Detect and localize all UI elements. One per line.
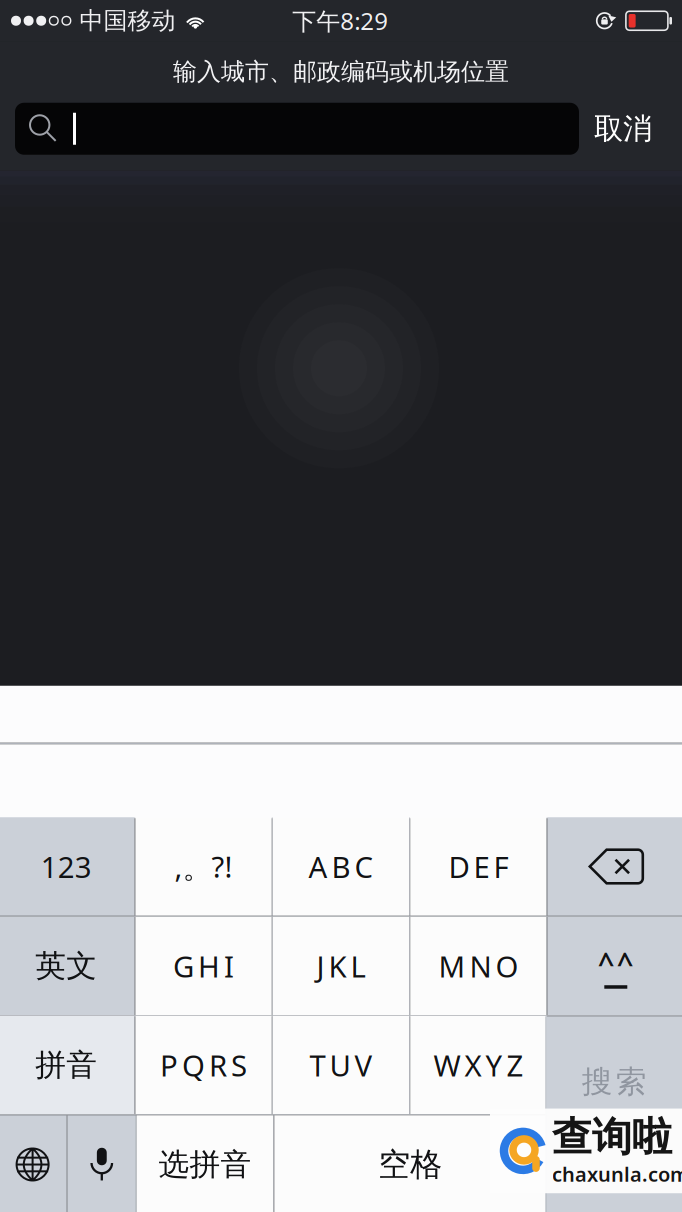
staticText: 搜索 xyxy=(582,1063,647,1101)
button[interactable]: 空格 xyxy=(274,1115,546,1212)
staticText: 中国移动 xyxy=(79,6,175,35)
staticText: 英文 xyxy=(35,947,97,985)
staticText: ^^ xyxy=(598,943,634,982)
staticText: 选拼音 xyxy=(159,1146,252,1183)
staticText: 123 xyxy=(41,847,92,886)
button[interactable]: WXYZ xyxy=(410,1016,547,1114)
button[interactable]: 拼音 xyxy=(0,1016,134,1114)
staticText: PQRS xyxy=(160,1045,247,1084)
button[interactable]: ,。?! xyxy=(135,817,272,916)
staticText: JKL xyxy=(316,946,365,985)
button[interactable]: PQRS xyxy=(135,1016,272,1114)
button[interactable]: Switch keyboard xyxy=(0,1115,67,1212)
button[interactable]: DEF xyxy=(410,817,547,916)
button[interactable]: Dictation xyxy=(68,1115,136,1212)
button[interactable]: TUV xyxy=(273,1016,409,1114)
button[interactable]: 英文 xyxy=(0,917,134,1015)
button[interactable]: GHI xyxy=(135,917,272,1015)
button[interactable]: JKL xyxy=(273,917,409,1015)
staticText: 下午8:29 xyxy=(292,5,388,37)
staticText: GHI xyxy=(173,946,234,985)
button[interactable]: 选拼音 xyxy=(137,1115,273,1212)
staticText: WXYZ xyxy=(433,1045,523,1084)
staticText: ABC xyxy=(308,847,373,886)
staticText: ,。?! xyxy=(175,847,233,886)
button[interactable]: 123 xyxy=(0,817,134,916)
staticText: 拼音 xyxy=(35,1046,97,1084)
button[interactable]: Emoticons xyxy=(548,917,682,1015)
staticText: MNO xyxy=(438,946,518,985)
button[interactable]: 取消 xyxy=(579,103,667,155)
staticText: 取消 xyxy=(594,111,652,147)
button[interactable]: MNO xyxy=(410,917,547,1015)
button[interactable]: Delete xyxy=(548,817,682,916)
staticText: 查询啦 xyxy=(552,1113,672,1162)
staticText: TUV xyxy=(309,1045,372,1084)
staticText: 空格 xyxy=(378,1145,442,1184)
button[interactable]: 搜索 xyxy=(546,1016,682,1212)
staticText: 输入城市、邮政编码或机场位置 xyxy=(173,57,509,86)
button[interactable]: ABC xyxy=(273,817,409,916)
staticText: chaxunla.com xyxy=(552,1161,682,1187)
staticText: DEF xyxy=(448,847,508,886)
